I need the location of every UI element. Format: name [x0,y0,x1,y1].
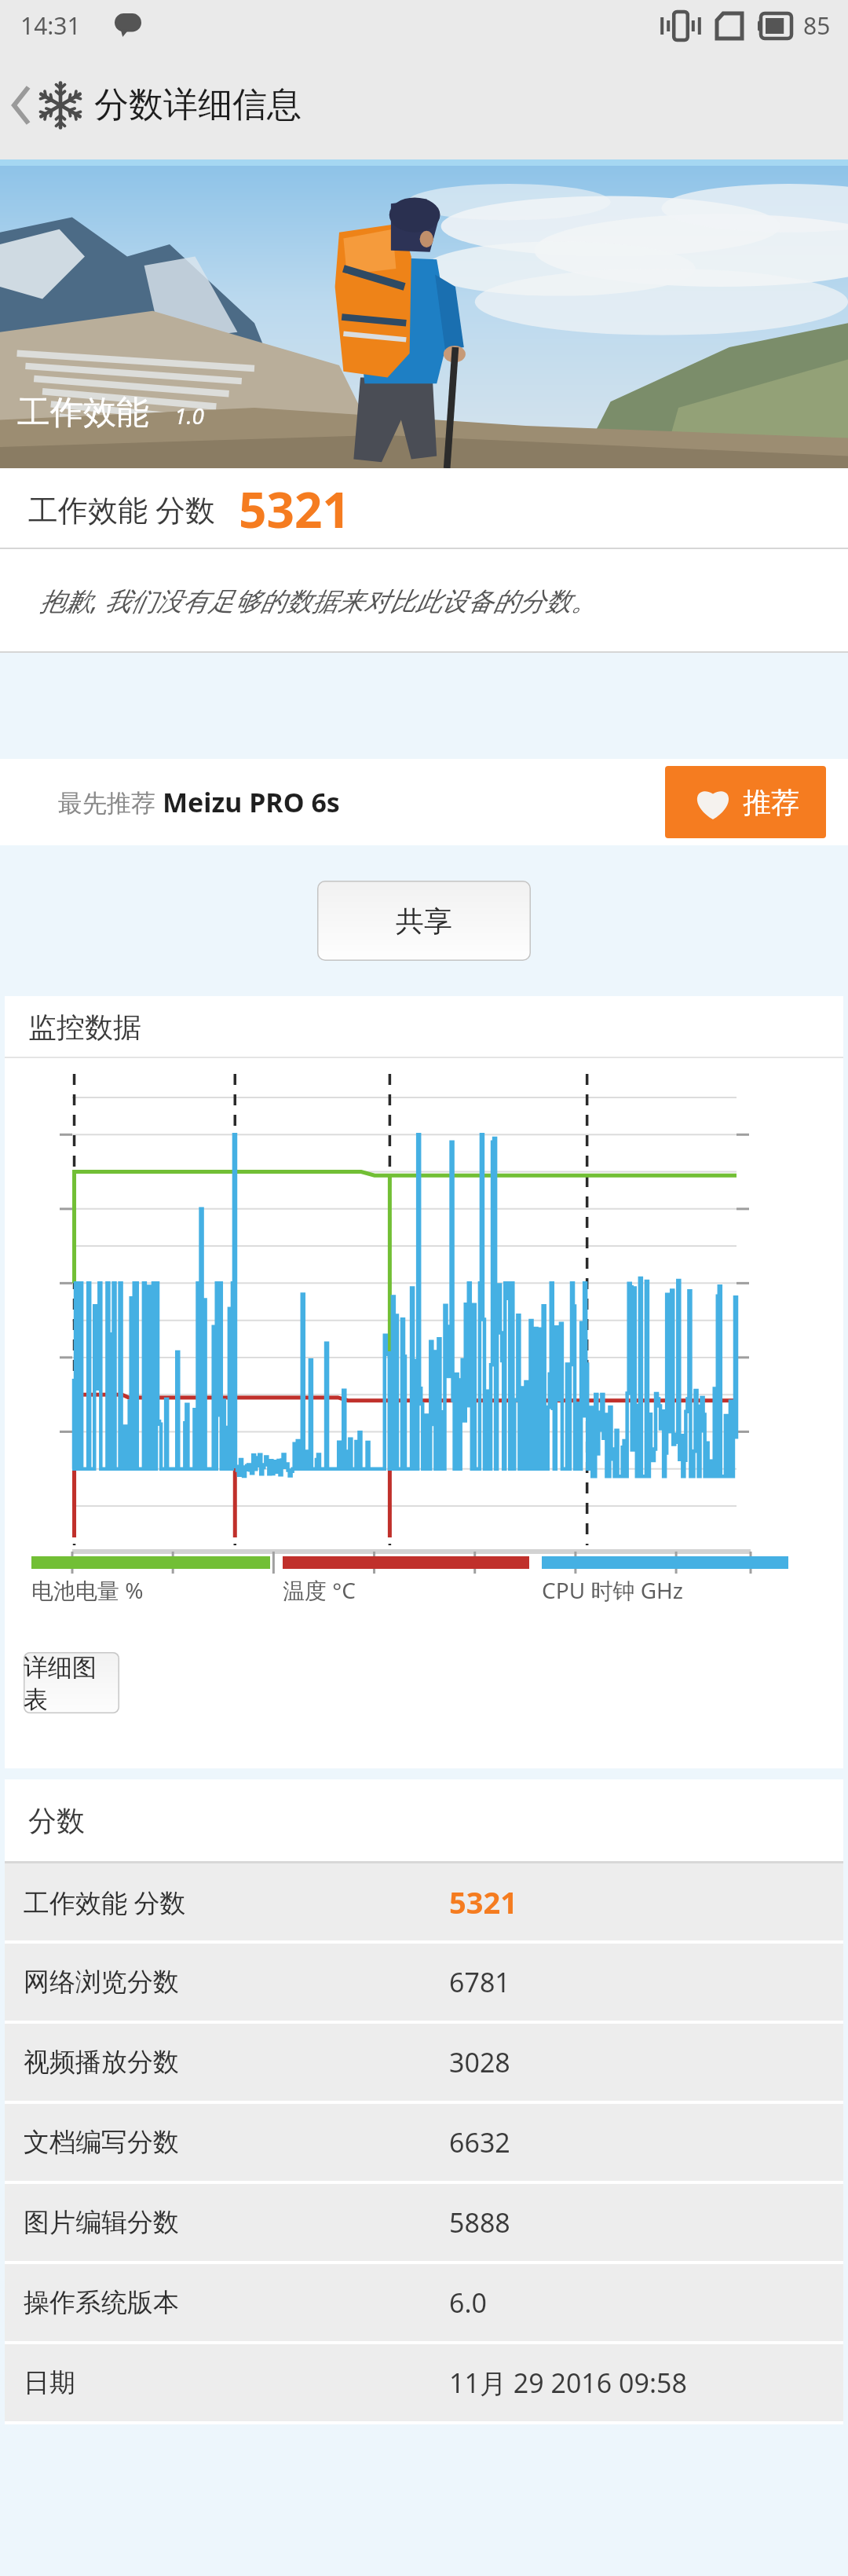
button[interactable]: 共享 [317,881,531,961]
staticText: 文档编写分数 [24,2126,179,2159]
staticText: 14:31 [20,9,81,42]
staticText: 抱歉, 我们没有足够的数据来对比此设备的分数。 [39,583,598,618]
button[interactable]: Back [0,50,848,159]
staticText: 工作效能 [17,392,149,434]
staticText: 网络浏览分数 [24,1966,179,1999]
staticText: 85 [803,9,831,42]
button[interactable]: 视频播放分数 [5,2024,843,2101]
staticText: 11月 29 2016 09:58 [449,2365,688,2401]
staticText: 分数 [28,1803,85,1838]
button[interactable]: 文档编写分数 [5,2104,843,2181]
staticText: 视频播放分数 [24,2046,179,2079]
staticText: 1.0 [174,401,205,431]
staticText: 工作效能 分数 [28,489,215,529]
staticText: Meizu PRO 6s [163,784,340,820]
staticText: 日期 [24,2366,75,2399]
staticText: 6781 [449,1964,510,2000]
button[interactable]: 详细图表 [24,1652,119,1713]
staticText: CPU 时钟 GHz [542,1575,683,1605]
staticText: 最先推荐 [58,786,163,819]
staticText: 3028 [449,2044,510,2080]
staticText: 工作效能 分数 [24,1885,186,1920]
button[interactable]: 图片编辑分数 [5,2184,843,2261]
staticText: 6632 [449,2124,510,2160]
staticText: 5888 [449,2204,510,2241]
button[interactable]: 推荐 [665,766,826,838]
staticText: 推荐 [743,785,799,820]
button[interactable]: 网络浏览分数 [5,1944,843,2021]
staticText: 电池电量 % [31,1575,144,1605]
staticText: 共享 [396,903,452,939]
button[interactable]: 操作系统版本 [5,2264,843,2341]
staticText: 5321 [239,476,350,542]
staticText: 详细图表 [24,1652,119,1713]
staticText: 图片编辑分数 [24,2206,179,2239]
staticText: 温度 °C [283,1575,356,1605]
staticText: 6.0 [449,2285,488,2321]
button[interactable]: 日期 [5,2344,843,2421]
staticText: 分数详细信息 [94,83,302,126]
staticText: 5321 [449,1882,517,1922]
button[interactable]: 工作效能 分数 [5,1863,843,1940]
staticText: 操作系统版本 [24,2286,179,2319]
staticText: 监控数据 [28,1010,141,1045]
